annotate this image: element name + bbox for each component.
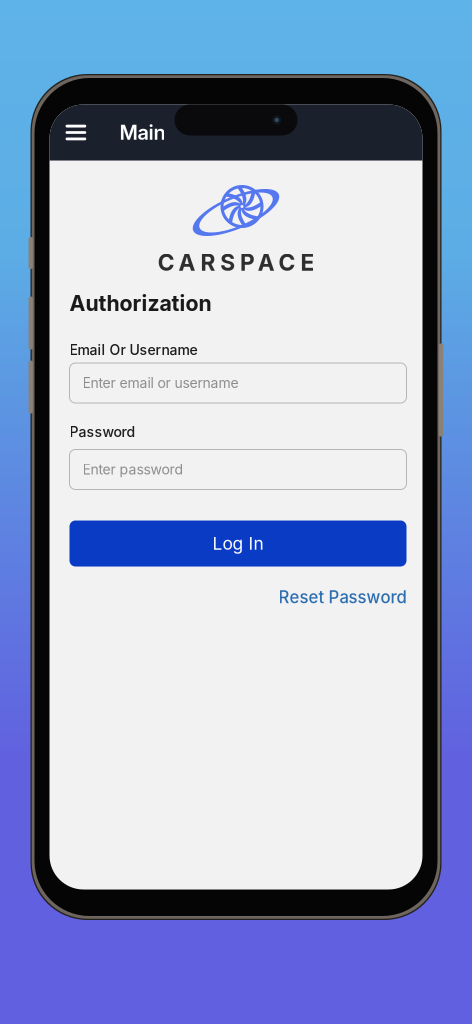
button[interactable]: Menu (57, 110, 94, 154)
button[interactable]: Main (119, 110, 165, 154)
staticText: Email Or Username (69, 341, 197, 358)
button[interactable]: Log In (69, 520, 406, 566)
staticText: Authorization (69, 290, 211, 316)
staticText: Log In (212, 533, 263, 554)
staticText: Password (69, 423, 135, 440)
button[interactable]: Enter email or username (69, 363, 406, 403)
button[interactable]: Enter password (69, 449, 406, 489)
staticText: Enter password (82, 461, 183, 478)
button[interactable]: Reset Password (278, 587, 406, 607)
staticText: Main (119, 120, 165, 145)
staticText: Enter email or username (82, 374, 238, 391)
staticText: CARSPACE (158, 249, 314, 276)
staticText: Reset Password (278, 587, 406, 607)
